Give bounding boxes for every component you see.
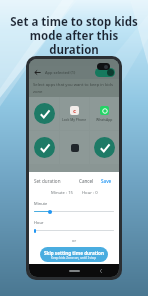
staticText: Set a time to stop kids mode after this …: [8, 14, 140, 57]
staticText: Set duration: [34, 178, 61, 184]
button[interactable]: Hour slider: [34, 229, 36, 233]
staticText: App selected (1): [45, 70, 76, 75]
button[interactable]: Save: [99, 177, 114, 185]
button[interactable]: c: [60, 97, 89, 130]
button[interactable]: Skip setting time duration: [40, 247, 108, 262]
staticText: c: [73, 107, 77, 115]
staticText: Hour: [34, 220, 44, 225]
button[interactable]: [90, 131, 119, 164]
staticText: Skip setting time duration: [44, 250, 104, 256]
button[interactable]: Toggle kids mode: [95, 68, 115, 77]
staticText: Keep kids Zone on, until I stop: [51, 256, 97, 260]
button[interactable]: Cancel: [77, 177, 96, 185]
button[interactable]: Back: [99, 269, 103, 273]
staticText: Save: [101, 178, 112, 184]
staticText: or: [72, 238, 77, 243]
button[interactable]: Back: [33, 68, 42, 77]
staticText: Lock My Phone: [62, 117, 87, 122]
button[interactable]: Home: [69, 270, 80, 272]
button[interactable]: Minute slider: [48, 210, 52, 214]
staticText: WhatsApp: [96, 117, 113, 122]
staticText: Select apps that you want to keep in kid…: [33, 82, 113, 94]
staticText: Cancel: [79, 178, 94, 184]
button[interactable]: [29, 131, 59, 164]
staticText: Minute: [34, 201, 48, 206]
staticText: Minute : 15: [51, 190, 74, 196]
staticText: Hour : 0: [82, 190, 98, 196]
button[interactable]: WhatsApp: [90, 97, 119, 130]
button[interactable]: [29, 97, 59, 130]
button[interactable]: [60, 131, 89, 164]
